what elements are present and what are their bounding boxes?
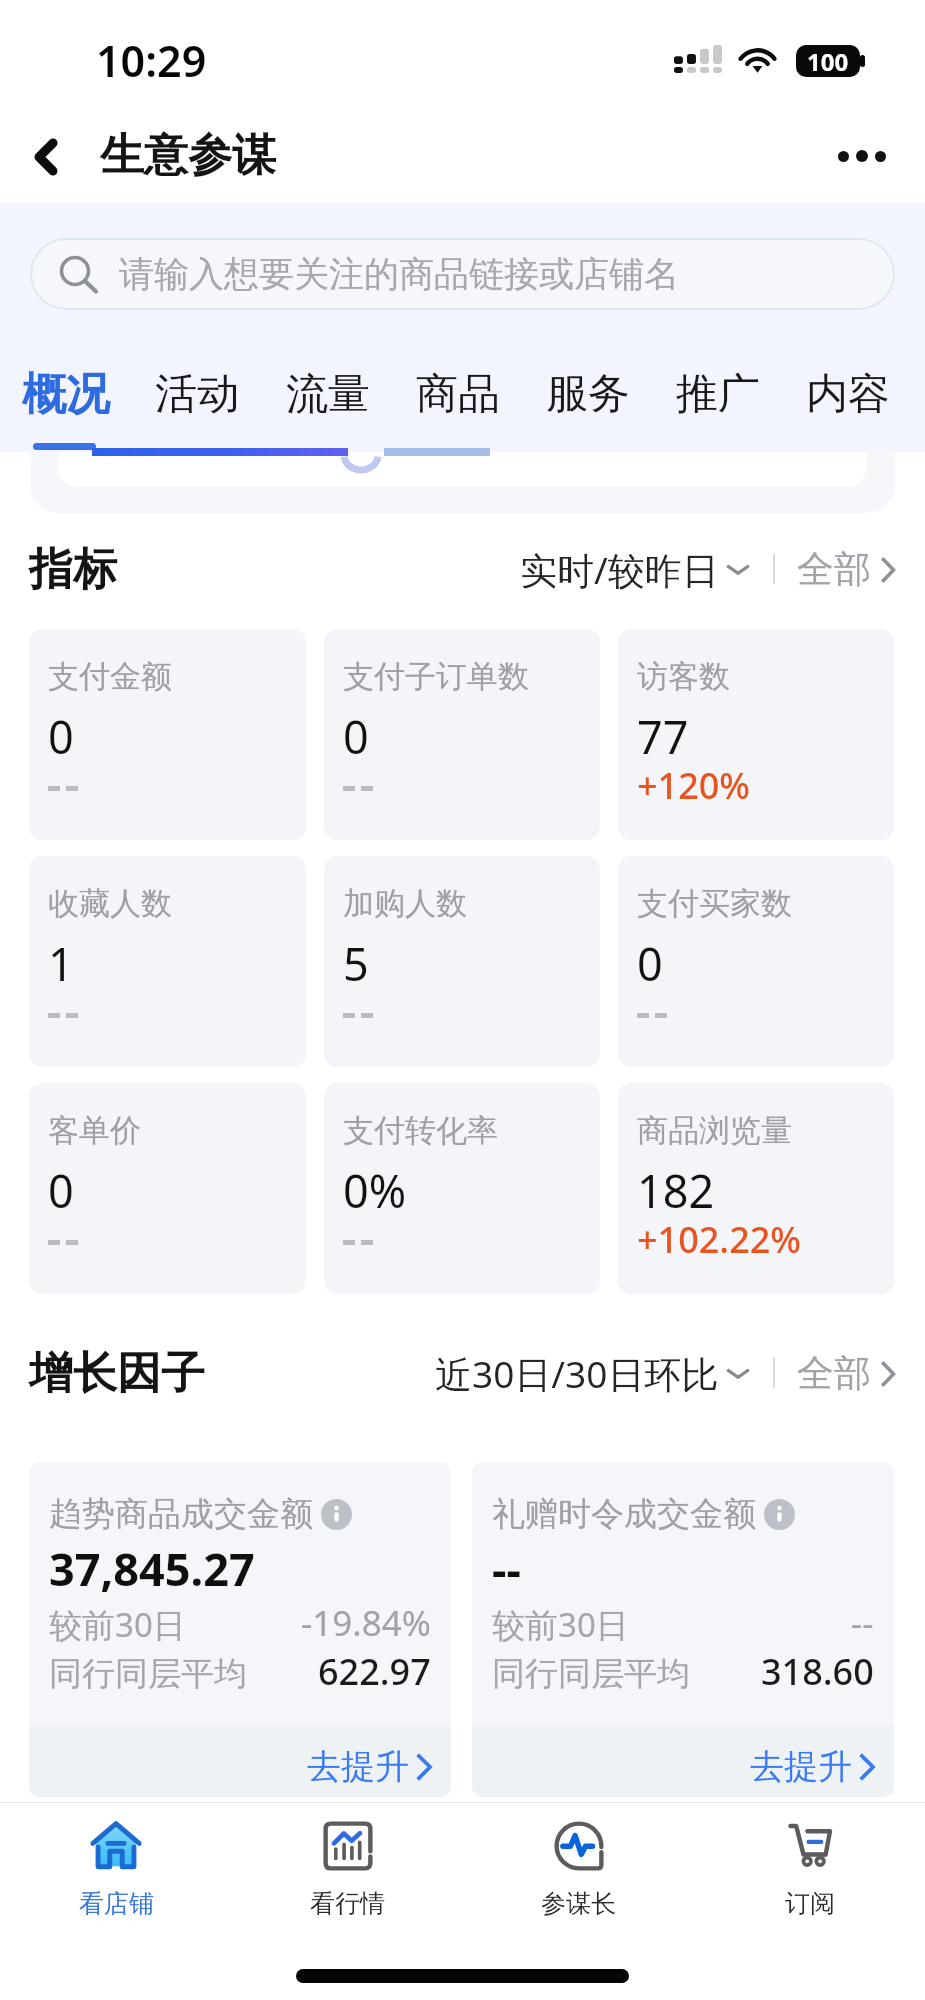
staticText: 较前30日 [492, 1602, 629, 1647]
staticText: 指标 [29, 542, 117, 597]
staticText: 622.97 [318, 1647, 431, 1696]
button[interactable]: 访客数 [618, 629, 894, 840]
staticText: 37,845.27 [49, 1538, 255, 1599]
button[interactable]: 实时/较昨日 [520, 544, 749, 595]
staticText: 实时/较昨日 [520, 544, 719, 595]
staticText: -- [851, 1599, 874, 1647]
staticText: 同行同层平均 [49, 1653, 247, 1695]
staticText: 加购人数 [343, 884, 467, 923]
staticText: 内容 [806, 368, 890, 421]
staticText: 访客数 [637, 657, 730, 696]
button[interactable]: 趋势商品成交金额 [29, 1462, 451, 1797]
button[interactable]: 支付金额 [29, 629, 306, 840]
button[interactable]: 去提升 [472, 1726, 894, 1797]
staticText: 较前30日 [49, 1602, 186, 1647]
staticText: 支付金额 [48, 657, 172, 696]
staticText: 商品 [416, 368, 500, 421]
staticText: 流量 [286, 368, 370, 421]
button[interactable]: 看店铺 [0, 1803, 232, 1935]
staticText: 支付转化率 [343, 1111, 498, 1150]
staticText: 生意参谋 [100, 128, 276, 183]
staticText: 近30日/30日环比 [435, 1348, 719, 1399]
staticText: 0 [48, 1160, 74, 1221]
button[interactable]: 推广 [653, 365, 783, 423]
staticText: 100 [807, 45, 849, 77]
staticText: +120% [637, 761, 751, 810]
button[interactable]: 支付子订单数 [324, 629, 600, 840]
staticText: 客单价 [48, 1111, 141, 1150]
button[interactable]: 参谋长 [463, 1803, 694, 1935]
staticText: 活动 [155, 368, 239, 421]
button[interactable]: 客单价 [29, 1083, 306, 1294]
button[interactable]: 全部 [797, 1350, 895, 1397]
button[interactable]: 流量 [262, 365, 393, 423]
button[interactable]: 去提升 [29, 1726, 451, 1797]
staticText: 同行同层平均 [492, 1653, 690, 1695]
staticText: 5 [343, 933, 369, 994]
staticText: 看店铺 [79, 1888, 154, 1919]
staticText: 全部 [797, 1350, 871, 1397]
staticText: 77 [637, 706, 689, 767]
button[interactable]: 内容 [783, 365, 913, 423]
staticText: 礼赠时令成交金额 [492, 1493, 756, 1535]
staticText: 10:29 [96, 31, 207, 90]
button[interactable]: 看行情 [232, 1803, 463, 1935]
staticText: 去提升 [307, 1745, 409, 1788]
staticText: 1 [48, 933, 74, 994]
staticText: 趋势商品成交金额 [49, 1493, 313, 1535]
staticText: +102.22% [637, 1215, 802, 1264]
staticText: -19.84% [301, 1599, 431, 1647]
staticText: 概况 [22, 367, 110, 422]
button[interactable]: 支付转化率 [324, 1083, 600, 1294]
button[interactable]: 加购人数 [324, 856, 600, 1067]
staticText: 参谋长 [541, 1888, 616, 1919]
staticText: 收藏人数 [48, 884, 172, 923]
button[interactable]: 服务 [523, 365, 653, 423]
staticText: 看行情 [310, 1888, 385, 1919]
staticText: 0% [343, 1160, 407, 1221]
button[interactable]: 商品 [393, 365, 523, 423]
button[interactable]: 近30日/30日环比 [435, 1348, 749, 1399]
staticText: 订阅 [785, 1888, 835, 1919]
button[interactable]: 支付买家数 [618, 856, 894, 1067]
staticText: 推广 [676, 368, 760, 421]
staticText: 0 [343, 706, 369, 767]
staticText: 服务 [546, 368, 630, 421]
button[interactable]: 礼赠时令成交金额 [472, 1462, 894, 1797]
staticText: 去提升 [750, 1745, 852, 1788]
button[interactable]: 收藏人数 [29, 856, 306, 1067]
button[interactable]: 订阅 [694, 1803, 925, 1935]
staticText: 商品浏览量 [637, 1111, 792, 1150]
staticText: 请输入想要关注的商品链接或店铺名 [119, 252, 679, 296]
button[interactable]: More options [819, 113, 905, 199]
staticText: 增长因子 [29, 1346, 205, 1401]
button[interactable]: 全部 [797, 546, 895, 593]
staticText: 全部 [797, 546, 871, 593]
button[interactable]: 活动 [131, 365, 262, 423]
button[interactable]: Back [12, 123, 80, 191]
button[interactable]: 概况 [0, 365, 131, 423]
staticText: 支付买家数 [637, 884, 792, 923]
staticText: 182 [637, 1160, 715, 1221]
staticText: 318.60 [761, 1647, 874, 1696]
button[interactable]: 商品浏览量 [618, 1083, 894, 1294]
staticText: -- [492, 1538, 521, 1599]
staticText: 支付子订单数 [343, 657, 529, 696]
button[interactable]: 请输入想要关注的商品链接或店铺名 [30, 238, 895, 310]
staticText: 0 [637, 933, 663, 994]
staticText: 0 [48, 706, 74, 767]
